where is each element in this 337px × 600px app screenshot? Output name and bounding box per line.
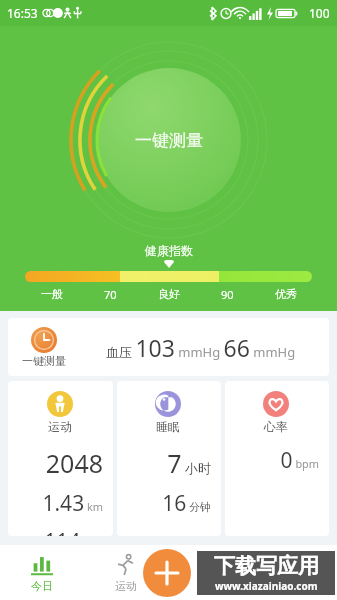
button[interactable]: 今日 xyxy=(0,545,84,600)
button[interactable]: 一键测量 xyxy=(8,318,329,376)
staticText: 16:53 xyxy=(7,5,38,21)
staticText: 100 xyxy=(309,5,330,21)
staticText: 血压 103 mmHg 66 mmHg xyxy=(106,332,296,363)
button[interactable]: 睡眠 xyxy=(117,381,221,536)
staticText: 2048 xyxy=(45,446,103,480)
staticText: 一键测量 xyxy=(135,130,203,151)
staticText: 一般 xyxy=(41,287,63,301)
staticText: 7 小时 xyxy=(167,446,211,480)
staticText: 下载写应用 xyxy=(214,553,319,579)
button[interactable]: One key measure xyxy=(69,40,269,240)
button[interactable]: 心率 xyxy=(225,381,329,536)
button[interactable]: 运动 xyxy=(84,545,168,600)
staticText: 运动 xyxy=(48,419,72,434)
staticText: 16 分钟 xyxy=(162,489,211,518)
staticText: 今日 xyxy=(31,579,53,593)
staticText: 优秀 xyxy=(275,287,297,301)
staticText: 运动 xyxy=(115,579,137,593)
staticText: 心率 xyxy=(264,419,288,434)
button[interactable]: 运动 xyxy=(8,381,113,536)
staticText: 健康指数 xyxy=(145,243,193,258)
staticText: 0 bpm xyxy=(280,446,319,475)
staticText: 114 kcal xyxy=(44,527,103,536)
staticText: www.xiazainiao.com xyxy=(215,579,318,593)
staticText: 70 xyxy=(104,287,117,302)
staticText: 睡眠 xyxy=(156,419,180,434)
staticText: 90 xyxy=(221,287,234,302)
staticText: 良好 xyxy=(158,287,180,301)
staticText: 一键测量 xyxy=(22,354,66,368)
staticText: 1.43 km xyxy=(42,489,103,518)
button[interactable]: Add xyxy=(143,549,191,597)
